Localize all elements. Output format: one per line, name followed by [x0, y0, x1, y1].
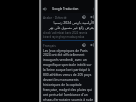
button[interactable]: Back [42, 6, 48, 12]
button[interactable]: Listen to source text [89, 14, 95, 20]
button[interactable]: Listen to translation [89, 42, 95, 48]
button[interactable]: Copy translation [81, 42, 87, 48]
button[interactable]: More options [91, 6, 97, 12]
staticText: الأولمبية باريس 2024 رسميا بعرض رائع غير… [43, 20, 94, 30]
staticText: alieab 'uwlimbiat bariz 2024 rasmia biea… [43, 31, 94, 39]
staticText: Google Traduction [52, 7, 79, 11]
staticText: Les Jeux olympiques de Paris 2024 ont ét… [43, 48, 94, 102]
staticText: Français [43, 43, 56, 47]
staticText: Arabe · Détecté [43, 15, 67, 19]
button[interactable]: Copy source text [81, 14, 87, 20]
